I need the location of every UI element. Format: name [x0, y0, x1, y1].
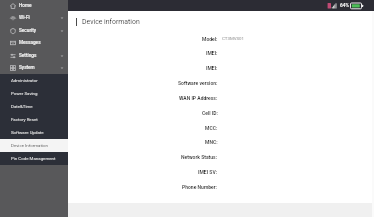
staticText: CT3MVS01 [222, 36, 245, 41]
button[interactable]: MNC: [0, 134, 374, 149]
staticText: MCC: [205, 125, 218, 131]
button[interactable]: Software Update [0, 126, 68, 139]
staticText: Settings [19, 53, 37, 59]
button[interactable]: Wi-Fi [0, 12, 68, 24]
staticText: Security [19, 28, 37, 34]
button[interactable]: Factory Reset [0, 113, 68, 126]
staticText: MNC: [205, 139, 218, 145]
staticText: Model: [202, 36, 218, 42]
staticText: 64% [340, 3, 350, 9]
staticText: Network Status: [181, 154, 218, 160]
staticText: Power Saving [11, 91, 38, 96]
button[interactable]: Security [0, 25, 68, 37]
staticText: WAN IP Address: [179, 95, 218, 101]
staticText: Wi-Fi [19, 15, 30, 21]
staticText: Device Information [11, 143, 48, 148]
staticText: Home [19, 3, 32, 9]
staticText: Pin Code Management [11, 156, 56, 161]
button[interactable]: Power Saving [0, 87, 68, 100]
staticText: Messages [19, 40, 41, 46]
button[interactable]: Software version: [0, 75, 374, 90]
button[interactable]: System [0, 62, 68, 74]
staticText: Phone Number: [182, 184, 218, 190]
button[interactable]: IMEI: [0, 60, 374, 75]
staticText: IMEI: [206, 65, 218, 71]
staticText: Factory Reset [11, 117, 38, 122]
button[interactable]: MCC: [0, 120, 374, 135]
button[interactable]: IMEI: [0, 45, 374, 60]
staticText: Date&Time [11, 104, 33, 109]
button[interactable]: Messages [0, 37, 68, 49]
button[interactable]: IMEI SV: [0, 164, 374, 179]
staticText: Software Update [11, 130, 44, 135]
button[interactable]: Device Information [0, 139, 68, 152]
button[interactable]: Network Status: [0, 149, 374, 164]
button[interactable]: Model: [0, 31, 374, 46]
button[interactable]: Phone Number: [0, 179, 374, 194]
button[interactable]: WAN IP Address: [0, 90, 374, 105]
button[interactable]: Settings [0, 50, 68, 62]
staticText: Software version: [178, 80, 218, 86]
button[interactable]: Date&Time [0, 100, 68, 113]
button[interactable]: Cell ID: [0, 105, 374, 120]
button[interactable]: Home [0, 0, 68, 12]
staticText: Device information [82, 18, 140, 26]
staticText: Cell ID: [202, 110, 218, 116]
staticText: IMEI SV: [198, 169, 218, 175]
button[interactable]: Administrator [0, 74, 68, 87]
staticText: System [19, 65, 35, 71]
staticText: IMEI: [206, 50, 218, 56]
button[interactable]: Pin Code Management [0, 152, 68, 165]
staticText: Administrator [11, 78, 38, 83]
